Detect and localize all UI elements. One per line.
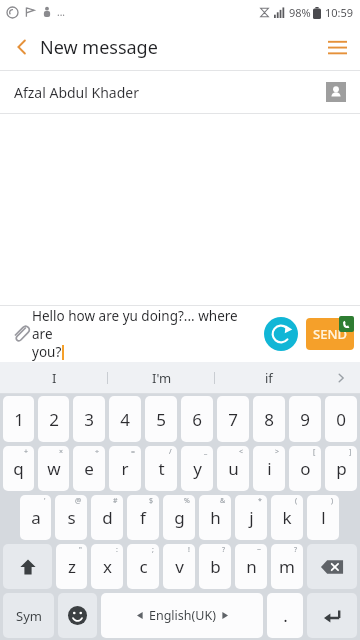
staticText: o — [300, 457, 311, 480]
staticText: 2 — [49, 408, 59, 431]
staticText: x — [103, 555, 112, 578]
staticText: I — [52, 369, 57, 387]
button[interactable]: 0 — [325, 396, 357, 442]
button[interactable]: More options — [314, 24, 360, 70]
staticText: _ — [204, 447, 208, 457]
staticText: [ — [313, 447, 316, 457]
staticText: p — [336, 457, 347, 480]
button[interactable]: n — [235, 544, 267, 589]
button[interactable]: 4 — [109, 396, 141, 442]
staticText: / — [169, 447, 172, 457]
button[interactable]: l — [307, 495, 339, 540]
button[interactable]: x — [91, 544, 123, 589]
button[interactable]: Shift — [3, 544, 52, 589]
staticText: ] — [349, 447, 352, 457]
button[interactable]: 7 — [217, 396, 249, 442]
staticText: ~ — [257, 545, 262, 555]
button[interactable]: 1 — [3, 396, 34, 442]
button[interactable]: More suggestions — [322, 362, 360, 394]
staticText: ! — [188, 545, 190, 555]
staticText: d — [102, 506, 113, 529]
staticText: SEND — [313, 325, 347, 343]
staticText: % — [184, 496, 190, 506]
button[interactable]: 5 — [145, 396, 177, 442]
staticText: b — [210, 555, 221, 578]
button[interactable]: e — [73, 446, 105, 491]
staticText: h — [210, 506, 221, 529]
button[interactable]: y — [181, 446, 213, 491]
staticText: a — [31, 506, 41, 529]
button[interactable]: Enter — [307, 593, 357, 638]
staticText: 7 — [228, 408, 238, 431]
staticText: 98% — [289, 5, 311, 20]
button[interactable]: Add contact — [326, 82, 346, 102]
button[interactable]: j — [235, 495, 267, 540]
button[interactable]: Backspace — [307, 544, 357, 589]
staticText: ? — [222, 545, 226, 555]
button[interactable]: z — [56, 544, 87, 589]
button[interactable]: Sync — [262, 315, 300, 353]
staticText: f — [140, 506, 146, 529]
staticText: i — [267, 457, 272, 480]
staticText: * — [258, 496, 262, 506]
staticText: ; — [152, 545, 154, 555]
button[interactable]: English(UK) — [101, 593, 263, 638]
button[interactable]: g — [163, 495, 195, 540]
button[interactable]: . — [267, 593, 303, 638]
button[interactable]: 3 — [73, 396, 105, 442]
staticText: ... — [57, 5, 66, 19]
button[interactable]: c — [127, 544, 159, 589]
button[interactable]: 6 — [181, 396, 213, 442]
button[interactable]: u — [217, 446, 249, 491]
staticText: Sym — [16, 607, 42, 625]
button[interactable]: SEND — [306, 318, 354, 350]
staticText: = — [131, 447, 136, 457]
button[interactable]: if — [215, 362, 322, 394]
staticText: > — [275, 447, 280, 457]
button[interactable]: w — [38, 446, 69, 491]
staticText: s — [67, 506, 76, 529]
staticText: e — [84, 457, 94, 480]
staticText: c — [139, 555, 148, 578]
staticText: . — [283, 604, 288, 627]
staticText: 8 — [264, 408, 274, 431]
button[interactable]: f — [127, 495, 159, 540]
button[interactable]: Sym — [3, 593, 54, 638]
staticText: 3 — [84, 408, 94, 431]
button[interactable]: r — [109, 446, 141, 491]
button[interactable]: v — [163, 544, 195, 589]
button[interactable]: m — [271, 544, 303, 589]
staticText: ÷ — [95, 447, 100, 457]
staticText: 6 — [192, 408, 202, 431]
button[interactable]: Back — [0, 24, 44, 70]
button[interactable]: d — [91, 495, 123, 540]
button[interactable]: I — [0, 362, 108, 394]
button[interactable]: t — [145, 446, 177, 491]
staticText: z — [68, 555, 76, 578]
button[interactable]: 9 — [289, 396, 321, 442]
button[interactable]: 8 — [253, 396, 285, 442]
button[interactable]: s — [55, 495, 87, 540]
staticText: ( — [295, 496, 298, 506]
button[interactable]: q — [3, 446, 34, 491]
button[interactable]: i — [253, 446, 285, 491]
button[interactable]: Emoji — [58, 593, 97, 638]
staticText: English(UK) — [149, 607, 216, 624]
staticText: 5 — [156, 408, 166, 431]
staticText: # — [113, 496, 118, 506]
button[interactable]: k — [271, 495, 303, 540]
button[interactable]: Afzal Abdul Khader — [0, 71, 360, 113]
button[interactable]: o — [289, 446, 321, 491]
staticText: 0 — [336, 408, 346, 431]
button[interactable]: I'm — [108, 362, 215, 394]
button[interactable]: p — [325, 446, 357, 491]
staticText: + — [24, 447, 29, 457]
button[interactable]: a — [20, 495, 51, 540]
staticText: I'm — [152, 369, 172, 387]
button[interactable]: Attach — [5, 318, 37, 350]
button[interactable]: 2 — [38, 396, 69, 442]
button[interactable]: h — [199, 495, 231, 540]
button[interactable]: b — [199, 544, 231, 589]
staticText: j — [249, 506, 254, 529]
staticText: y — [193, 457, 202, 480]
